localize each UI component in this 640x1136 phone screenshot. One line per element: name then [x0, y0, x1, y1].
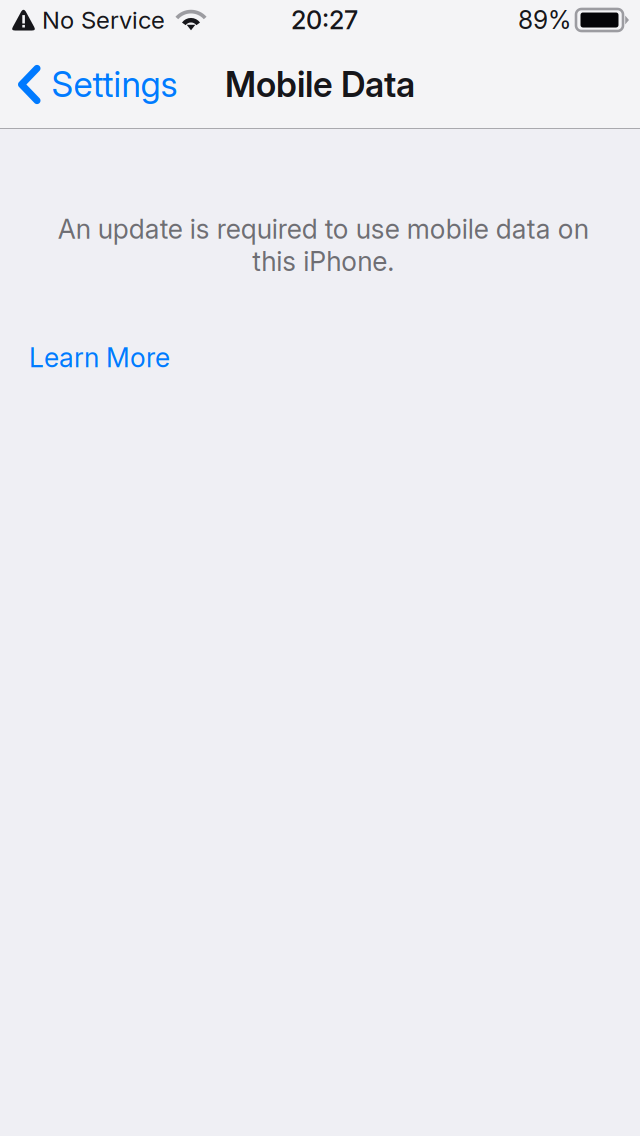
- staticText: Mobile Data: [225, 63, 415, 105]
- button[interactable]: Learn More: [0, 335, 199, 380]
- staticText: No Service: [42, 5, 165, 34]
- staticText: An update is required to use mobile data…: [57, 213, 588, 277]
- button[interactable]: Back to Settings: [0, 40, 191, 129]
- staticText: Settings: [51, 63, 177, 105]
- staticText: 20:27: [291, 5, 358, 35]
- staticText: 89%: [518, 5, 571, 35]
- staticText: Learn More: [29, 341, 170, 374]
